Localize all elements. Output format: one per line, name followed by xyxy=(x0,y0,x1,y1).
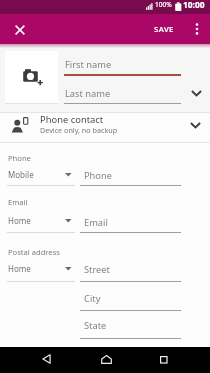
button[interactable]: SAVE xyxy=(154,19,174,39)
staticText: Email xyxy=(8,197,28,207)
staticText: Phone xyxy=(84,169,112,182)
staticText: Device only, no backup xyxy=(40,125,118,135)
staticText: Email xyxy=(84,216,108,229)
staticText: Mobile xyxy=(8,169,34,180)
staticText: State xyxy=(84,319,107,332)
staticText: City xyxy=(84,292,101,305)
staticText: Street xyxy=(84,263,110,276)
button[interactable] xyxy=(0,212,78,232)
staticText: Home xyxy=(8,215,31,226)
button[interactable] xyxy=(0,113,210,142)
staticText: Phone contact xyxy=(40,113,104,126)
staticText: SAVE xyxy=(154,24,174,35)
staticText: First name xyxy=(65,58,112,71)
staticText: 100% xyxy=(155,0,172,9)
button[interactable] xyxy=(0,259,78,279)
button[interactable] xyxy=(36,348,57,369)
button[interactable] xyxy=(10,20,30,40)
staticText: Postal address xyxy=(8,247,60,257)
button[interactable] xyxy=(96,349,117,370)
button[interactable] xyxy=(189,19,204,39)
button[interactable] xyxy=(5,51,58,103)
staticText: Phone xyxy=(8,153,31,163)
staticText: 10:00 xyxy=(183,0,205,10)
button[interactable] xyxy=(153,349,174,370)
button[interactable] xyxy=(0,166,78,186)
staticText: Last name xyxy=(65,87,111,100)
staticText: Home xyxy=(8,263,31,274)
